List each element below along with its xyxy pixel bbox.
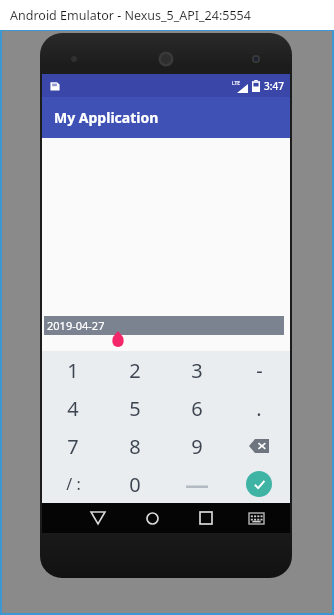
staticText: 3	[191, 357, 203, 384]
button[interactable]: Backspace	[228, 427, 290, 465]
button[interactable]: 9	[166, 427, 228, 465]
button[interactable]: 7	[42, 427, 104, 465]
button[interactable]: 2019-04-27	[44, 316, 284, 335]
staticText: / :	[66, 473, 81, 495]
staticText: 5	[129, 395, 141, 422]
button[interactable]: 2	[104, 351, 166, 389]
staticText: My Application	[54, 108, 159, 127]
button[interactable]: 3	[166, 351, 228, 389]
button[interactable]: Recent apps	[179, 503, 233, 533]
staticText: 3:47	[264, 79, 284, 93]
button[interactable]: My Application	[42, 97, 290, 138]
staticText: 9	[191, 433, 203, 460]
button[interactable]: 8	[104, 427, 166, 465]
button[interactable]: Hide keyboard	[233, 503, 279, 533]
staticText: .	[256, 395, 262, 422]
button[interactable]: Back	[71, 503, 125, 533]
staticText: 2	[129, 357, 141, 384]
staticText: -	[256, 357, 263, 384]
staticText: 6	[191, 395, 203, 422]
button[interactable]: 4	[42, 389, 104, 427]
staticText: 1	[67, 357, 79, 384]
button[interactable]: Done	[228, 465, 290, 503]
button[interactable]: Space	[166, 465, 228, 503]
button[interactable]: 0	[104, 465, 166, 503]
staticText: 0	[129, 471, 141, 498]
button[interactable]: 5	[104, 389, 166, 427]
staticText: 7	[67, 433, 79, 460]
button[interactable]: Home	[125, 503, 179, 533]
staticText: 2019-04-27	[47, 318, 105, 333]
button[interactable]: -	[228, 351, 290, 389]
staticText: Android Emulator - Nexus_5_API_24:5554	[10, 7, 251, 24]
button[interactable]: / :	[42, 465, 104, 503]
staticText: 4	[67, 395, 79, 422]
button[interactable]: 1	[42, 351, 104, 389]
button[interactable]: 6	[166, 389, 228, 427]
staticText: 8	[129, 433, 141, 460]
staticText: LTE	[232, 80, 241, 87]
button[interactable]: .	[228, 389, 290, 427]
